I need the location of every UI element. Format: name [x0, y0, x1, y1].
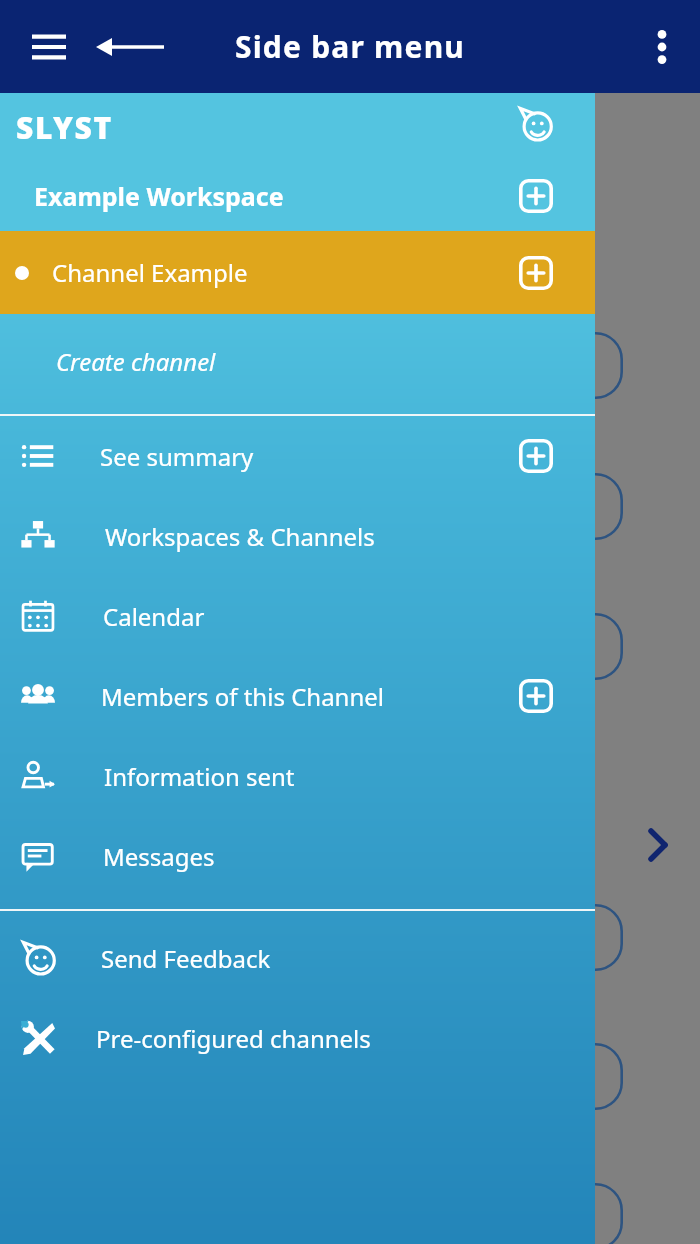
button[interactable]: [520, 1043, 623, 1110]
button[interactable]: Calendar: [0, 576, 595, 656]
button[interactable]: Workspaces & Channels: [0, 496, 595, 576]
button[interactable]: Open navigation menu: [26, 24, 72, 70]
button[interactable]: [520, 1183, 623, 1244]
button[interactable]: Add to channel: [516, 253, 556, 293]
staticText: SLYST: [16, 107, 113, 148]
staticText: Information sent: [104, 760, 295, 793]
staticText: Example Workspace: [34, 179, 284, 213]
button[interactable]: Add member: [516, 676, 556, 716]
staticText: See summary: [100, 440, 254, 473]
button[interactable]: Feedback: [513, 101, 559, 147]
button[interactable]: More options: [638, 23, 686, 71]
staticText: Workspaces & Channels: [105, 520, 375, 553]
button[interactable]: Add workspace: [516, 176, 556, 216]
staticText: Members of this Channel: [101, 680, 384, 713]
button[interactable]: Messages: [0, 816, 595, 896]
button[interactable]: Pre-configured channels: [0, 998, 595, 1078]
staticText: Channel Example: [52, 256, 248, 289]
staticText: Messages: [103, 840, 215, 873]
staticText: Create channel: [56, 345, 216, 378]
button[interactable]: See summary: [0, 416, 595, 496]
button[interactable]: Back: [90, 24, 170, 70]
staticText: Side bar menu: [0, 26, 700, 67]
button[interactable]: Send Feedback: [0, 918, 595, 998]
button[interactable]: Information sent: [0, 736, 595, 816]
button[interactable]: Members of this Channel: [0, 656, 595, 736]
staticText: Pre-configured channels: [96, 1022, 371, 1055]
staticText: Send Feedback: [101, 942, 271, 975]
button[interactable]: Expand: [634, 815, 682, 875]
button[interactable]: Create channel: [0, 314, 595, 414]
button[interactable]: Channel Example: [0, 231, 595, 314]
button[interactable]: [520, 473, 623, 540]
button[interactable]: Add summary: [516, 436, 556, 476]
button[interactable]: [520, 613, 623, 680]
button[interactable]: Example Workspace: [0, 161, 595, 231]
button[interactable]: [520, 332, 623, 399]
staticText: Calendar: [103, 600, 205, 633]
button[interactable]: [520, 904, 623, 971]
